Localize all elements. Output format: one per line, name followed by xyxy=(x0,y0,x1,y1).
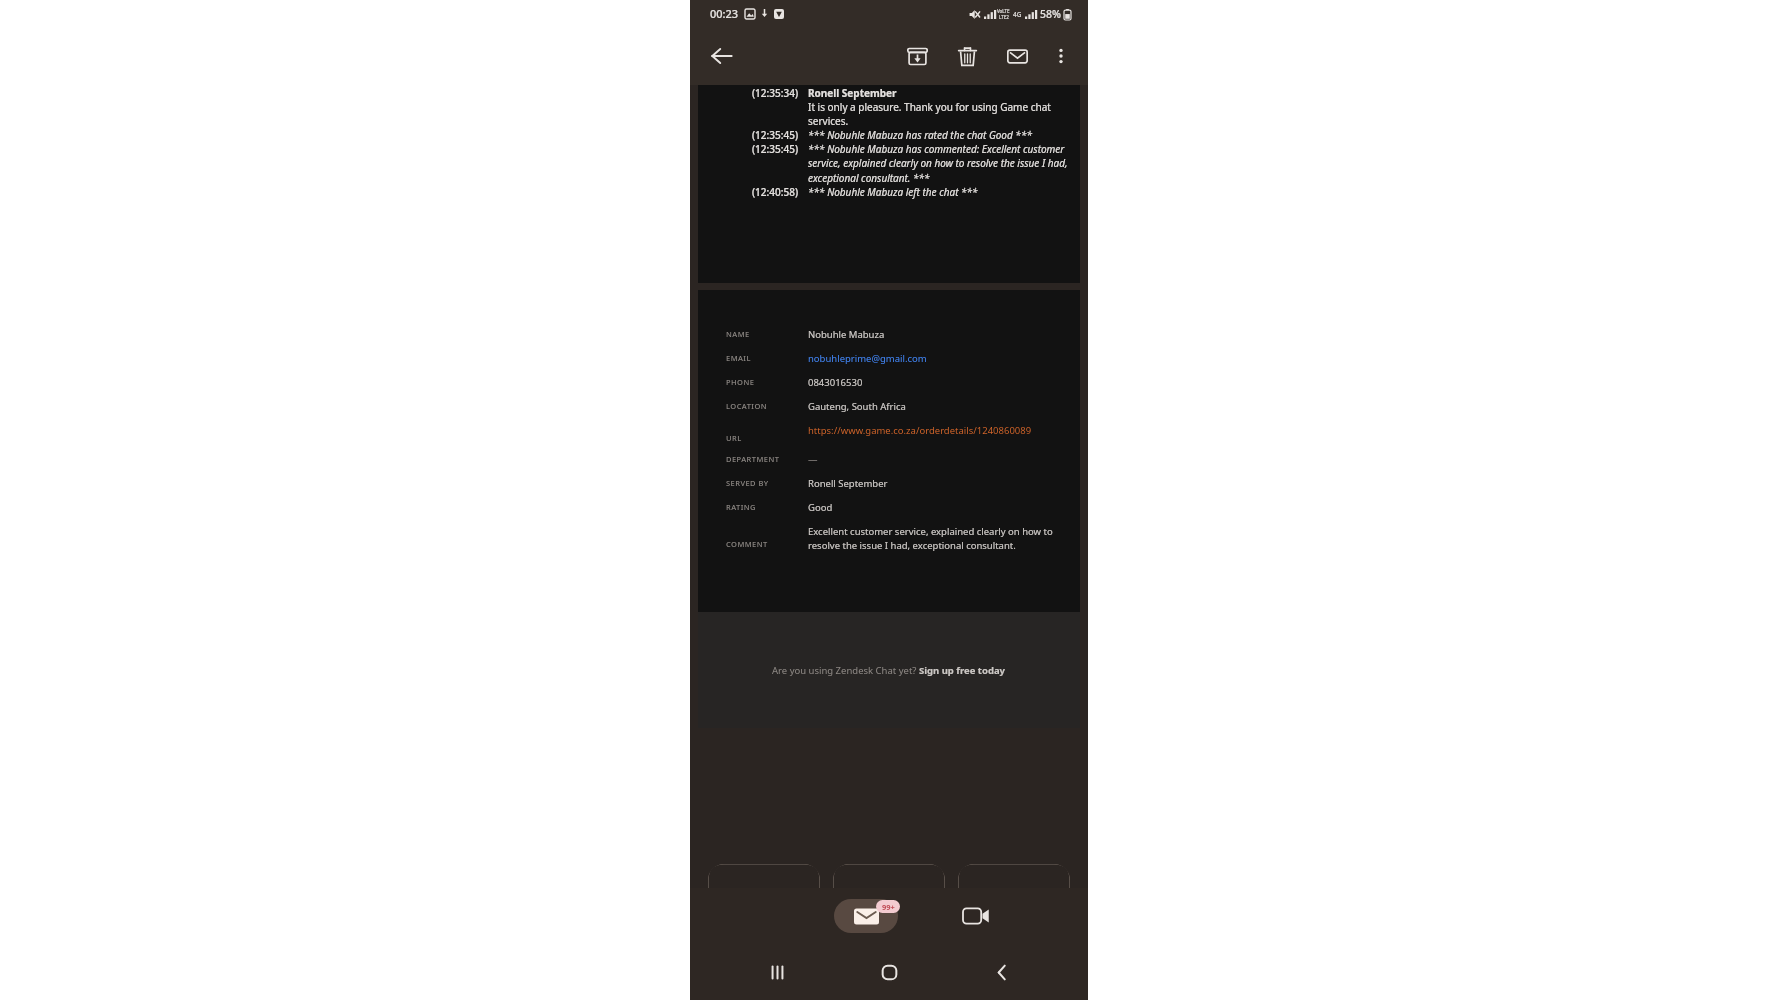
staticText: 99+ xyxy=(882,902,895,912)
staticText: 58% xyxy=(1040,7,1061,21)
staticText: 0843016530 xyxy=(808,376,863,389)
staticText: 00:23 xyxy=(710,6,739,21)
staticText: NAME xyxy=(726,329,808,339)
button[interactable]: Recent apps xyxy=(751,946,803,998)
button[interactable]: Are you using Zendesk Chat yet? Sign up … xyxy=(772,664,1006,677)
staticText: 4G xyxy=(1013,10,1022,19)
staticText: RATING xyxy=(726,502,808,512)
staticText: Ronell September xyxy=(808,86,897,100)
button[interactable]: Home xyxy=(863,946,915,998)
button[interactable]: Delete xyxy=(946,35,988,77)
staticText: SERVED BY xyxy=(726,478,808,488)
staticText: *** Nobuhle Mabuza left the chat *** xyxy=(808,185,978,199)
staticText: VoLTE xyxy=(997,8,1010,14)
staticText: (12:35:45) xyxy=(722,128,798,142)
staticText: — xyxy=(808,453,818,466)
staticText: Nobuhle Mabuza xyxy=(808,328,885,341)
button[interactable]: Back xyxy=(976,946,1028,998)
button[interactable]: Quick reply xyxy=(958,864,1070,888)
staticText: DEPARTMENT xyxy=(726,454,808,464)
staticText: Ronell September xyxy=(808,477,888,490)
staticText: Gauteng, South Africa xyxy=(808,400,906,413)
staticText: It is only a pleasure. Thank you for usi… xyxy=(808,100,1070,128)
button[interactable]: Quick reply xyxy=(833,864,945,888)
button[interactable]: Quick reply xyxy=(708,864,820,888)
staticText: Excellent customer service, explained cl… xyxy=(808,525,1070,551)
staticText: *** Nobuhle Mabuza has commented: Excell… xyxy=(808,142,1070,185)
staticText: PHONE xyxy=(726,377,808,387)
button[interactable]: Inbox xyxy=(834,899,898,933)
staticText: *** Nobuhle Mabuza has rated the chat Go… xyxy=(808,128,1032,142)
staticText: LOCATION xyxy=(726,401,808,411)
button[interactable]: More options xyxy=(1040,35,1082,77)
button[interactable]: Navigate up xyxy=(700,34,744,78)
button[interactable]: Archive xyxy=(896,35,938,77)
button[interactable]: https://www.game.co.za/orderdetails/1240… xyxy=(808,424,1032,437)
button[interactable]: nobuhleprime@gmail.com xyxy=(808,352,927,365)
staticText: EMAIL xyxy=(726,353,808,363)
staticText: LTE2 xyxy=(999,14,1009,20)
staticText: Are you using Zendesk Chat yet? Sign up … xyxy=(772,664,1006,677)
staticText: (12:40:58) xyxy=(722,185,798,199)
button[interactable]: Mark unread xyxy=(996,35,1038,77)
staticText: (12:35:45) xyxy=(722,142,798,156)
staticText: Good xyxy=(808,501,833,514)
button[interactable]: Video call xyxy=(952,892,1000,940)
staticText: URL xyxy=(726,433,808,443)
staticText: COMMENT xyxy=(726,539,808,549)
staticText: (12:35:34) xyxy=(722,86,798,100)
